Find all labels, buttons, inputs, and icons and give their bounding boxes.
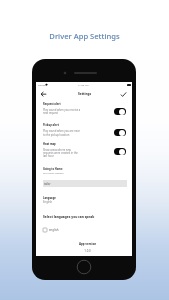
staticText: Language bbox=[43, 196, 56, 199]
button[interactable]: Request alert bbox=[114, 108, 126, 115]
staticText: Driver App Settings bbox=[0, 31, 169, 41]
staticText: Show areas where new bbox=[43, 148, 71, 152]
staticText: to the pickup location bbox=[43, 133, 70, 137]
staticText: new request bbox=[43, 111, 59, 115]
staticText: tailor bbox=[44, 182, 51, 186]
button[interactable]: english bbox=[43, 228, 59, 232]
button[interactable]: Pickup alert bbox=[36, 123, 132, 141]
staticText: requests were created in the bbox=[43, 151, 78, 155]
staticText: Settings bbox=[78, 92, 92, 96]
staticText: Going to Home bbox=[43, 167, 63, 170]
staticText: Set Home Address bbox=[43, 171, 64, 174]
staticText: Request alert bbox=[43, 102, 61, 105]
button[interactable]: Heat map bbox=[114, 148, 126, 155]
staticText: english bbox=[49, 228, 59, 232]
staticText: Play sound when you are near bbox=[43, 129, 80, 133]
staticText: last hour bbox=[43, 154, 54, 158]
button[interactable]: Request alert bbox=[36, 102, 132, 120]
staticText: Play sound when you receive a bbox=[43, 108, 81, 112]
button[interactable]: Pickup alert bbox=[114, 129, 126, 136]
staticText: Select languages you can speak bbox=[43, 215, 95, 219]
staticText: Carrier bbox=[38, 83, 46, 86]
button[interactable]: Done bbox=[120, 91, 127, 98]
button[interactable]: tailor bbox=[43, 180, 127, 187]
staticText: Heat map bbox=[43, 142, 56, 145]
staticText: Pickup alert bbox=[43, 123, 59, 126]
staticText: 1.0.0 bbox=[43, 249, 132, 253]
staticText: English bbox=[43, 200, 53, 204]
staticText: 11:53 AM bbox=[78, 83, 89, 86]
staticText: App version bbox=[43, 242, 132, 246]
button[interactable]: Heat map bbox=[36, 142, 132, 160]
button[interactable]: Back bbox=[40, 90, 48, 98]
